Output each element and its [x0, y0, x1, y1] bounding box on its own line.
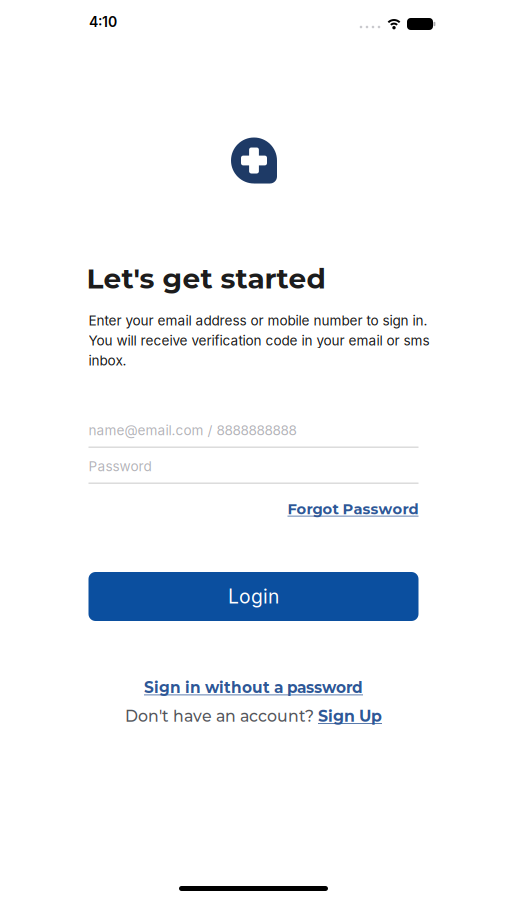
staticText: Sign in without a password	[144, 678, 363, 697]
button[interactable]: Forgot Password	[88, 500, 418, 518]
button[interactable]: Sign in without a password	[144, 678, 363, 697]
staticText: Let's get started	[86, 261, 325, 295]
button[interactable]: Password	[88, 461, 418, 481]
staticText: name@email.com / 8888888888	[88, 422, 296, 438]
staticText: Sign Up	[318, 706, 382, 726]
staticText: Don't have an account?	[125, 706, 314, 726]
staticText: Password	[88, 458, 151, 474]
button[interactable]: Don't have an account?	[125, 706, 382, 726]
staticText: 4:10	[89, 13, 117, 30]
staticText: Login	[228, 585, 279, 608]
staticText: Forgot Password	[287, 500, 418, 518]
button[interactable]: Login	[88, 572, 418, 621]
staticText: Enter your email address or mobile numbe…	[88, 312, 429, 369]
button[interactable]: name@email.com / 8888888888	[88, 425, 418, 445]
